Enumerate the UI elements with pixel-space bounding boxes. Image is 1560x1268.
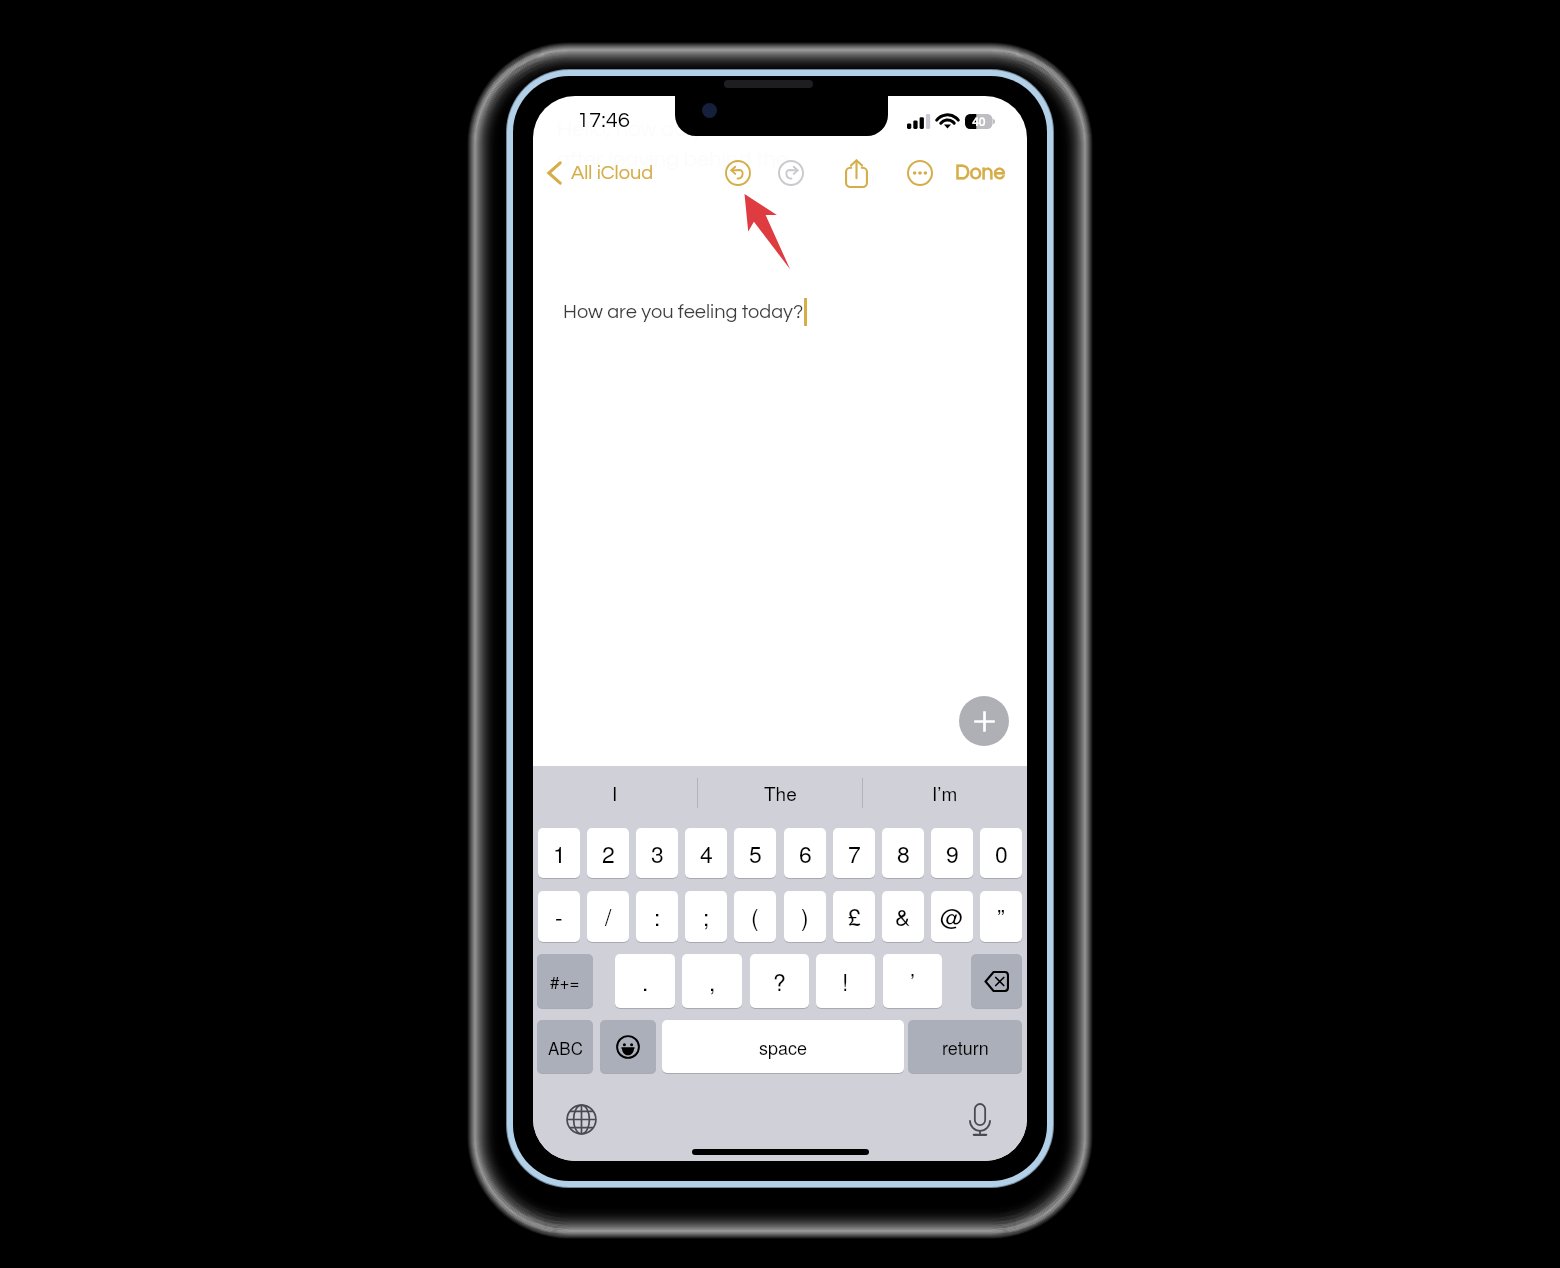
- button[interactable]: Undo: [721, 156, 755, 190]
- button[interactable]: 4: [685, 828, 727, 878]
- staticText: !: [842, 965, 849, 998]
- button[interactable]: 5: [734, 828, 776, 878]
- button[interactable]: More options: [903, 156, 937, 190]
- staticText: return: [942, 1034, 989, 1060]
- staticText: 1: [553, 837, 566, 870]
- button[interactable]: #+=: [537, 954, 593, 1008]
- staticText: I’m: [932, 779, 958, 806]
- button[interactable]: ;: [685, 891, 727, 942]
- button[interactable]: £: [833, 891, 875, 942]
- button[interactable]: All iCloud: [544, 156, 657, 190]
- staticText: 7: [848, 837, 861, 870]
- staticText: /: [605, 900, 612, 933]
- staticText: .: [642, 965, 649, 998]
- staticText: after leaving behind the: [557, 148, 789, 171]
- staticText: 6: [799, 837, 812, 870]
- staticText: @: [940, 900, 964, 933]
- button[interactable]: ’: [883, 954, 942, 1008]
- button[interactable]: ”: [980, 891, 1022, 942]
- button[interactable]: .: [615, 954, 675, 1008]
- button[interactable]: The: [698, 766, 862, 819]
- staticText: 5: [749, 837, 762, 870]
- button[interactable]: :: [636, 891, 678, 942]
- button[interactable]: ABC: [537, 1020, 593, 1073]
- button[interactable]: 8: [882, 828, 924, 878]
- staticText: #+=: [550, 969, 580, 993]
- button[interactable]: (: [734, 891, 776, 942]
- staticText: ): [801, 900, 809, 933]
- button[interactable]: Emoji keyboard: [600, 1020, 656, 1073]
- button[interactable]: @: [931, 891, 973, 942]
- staticText: &: [895, 900, 911, 933]
- button[interactable]: return: [908, 1020, 1022, 1073]
- button[interactable]: !: [816, 954, 875, 1008]
- staticText: (: [751, 900, 759, 933]
- staticText: ’: [910, 965, 916, 998]
- button[interactable]: -: [538, 891, 580, 942]
- staticText: All iCloud: [571, 163, 654, 184]
- button[interactable]: ,: [682, 954, 742, 1008]
- button[interactable]: 3: [636, 828, 678, 878]
- button[interactable]: Dictate: [962, 1101, 998, 1137]
- staticText: ”: [997, 900, 1005, 933]
- button[interactable]: 1: [538, 828, 580, 878]
- button[interactable]: /: [587, 891, 629, 942]
- button[interactable]: 2: [587, 828, 629, 878]
- button[interactable]: Add attachment: [959, 696, 1009, 746]
- button[interactable]: Share: [839, 156, 873, 190]
- button[interactable]: space: [662, 1020, 904, 1073]
- button[interactable]: 7: [833, 828, 875, 878]
- staticText: The: [764, 779, 797, 806]
- staticText: space: [759, 1034, 808, 1060]
- button[interactable]: 9: [931, 828, 973, 878]
- staticText: 4: [700, 837, 713, 870]
- button[interactable]: ?: [750, 954, 809, 1008]
- staticText: -: [555, 900, 563, 933]
- button[interactable]: &: [882, 891, 924, 942]
- button[interactable]: 6: [784, 828, 826, 878]
- staticText: I: [612, 779, 618, 806]
- staticText: 40: [972, 116, 986, 128]
- button[interactable]: 0: [980, 828, 1022, 878]
- staticText: Hello, how do you feel: [557, 118, 768, 141]
- button[interactable]: I’m: [863, 766, 1027, 819]
- staticText: Done: [955, 162, 1006, 184]
- staticText: 8: [897, 837, 910, 870]
- button[interactable]: ): [784, 891, 826, 942]
- button[interactable]: Change keyboard: [564, 1102, 598, 1136]
- staticText: :: [654, 900, 661, 933]
- staticText: £: [848, 900, 861, 933]
- staticText: ,: [709, 965, 716, 998]
- staticText: ?: [773, 965, 786, 998]
- staticText: ;: [703, 900, 710, 933]
- staticText: ABC: [548, 1035, 583, 1059]
- button[interactable]: Redo: [774, 156, 808, 190]
- staticText: 3: [651, 837, 664, 870]
- staticText: 17:46: [577, 109, 630, 132]
- staticText: 2: [602, 837, 615, 870]
- staticText: 0: [995, 837, 1008, 870]
- button[interactable]: Backspace: [971, 954, 1022, 1008]
- button[interactable]: I: [533, 766, 697, 819]
- staticText: 9: [946, 837, 959, 870]
- button[interactable]: Done: [951, 157, 1010, 189]
- staticText: How are you feeling today?: [563, 302, 804, 323]
